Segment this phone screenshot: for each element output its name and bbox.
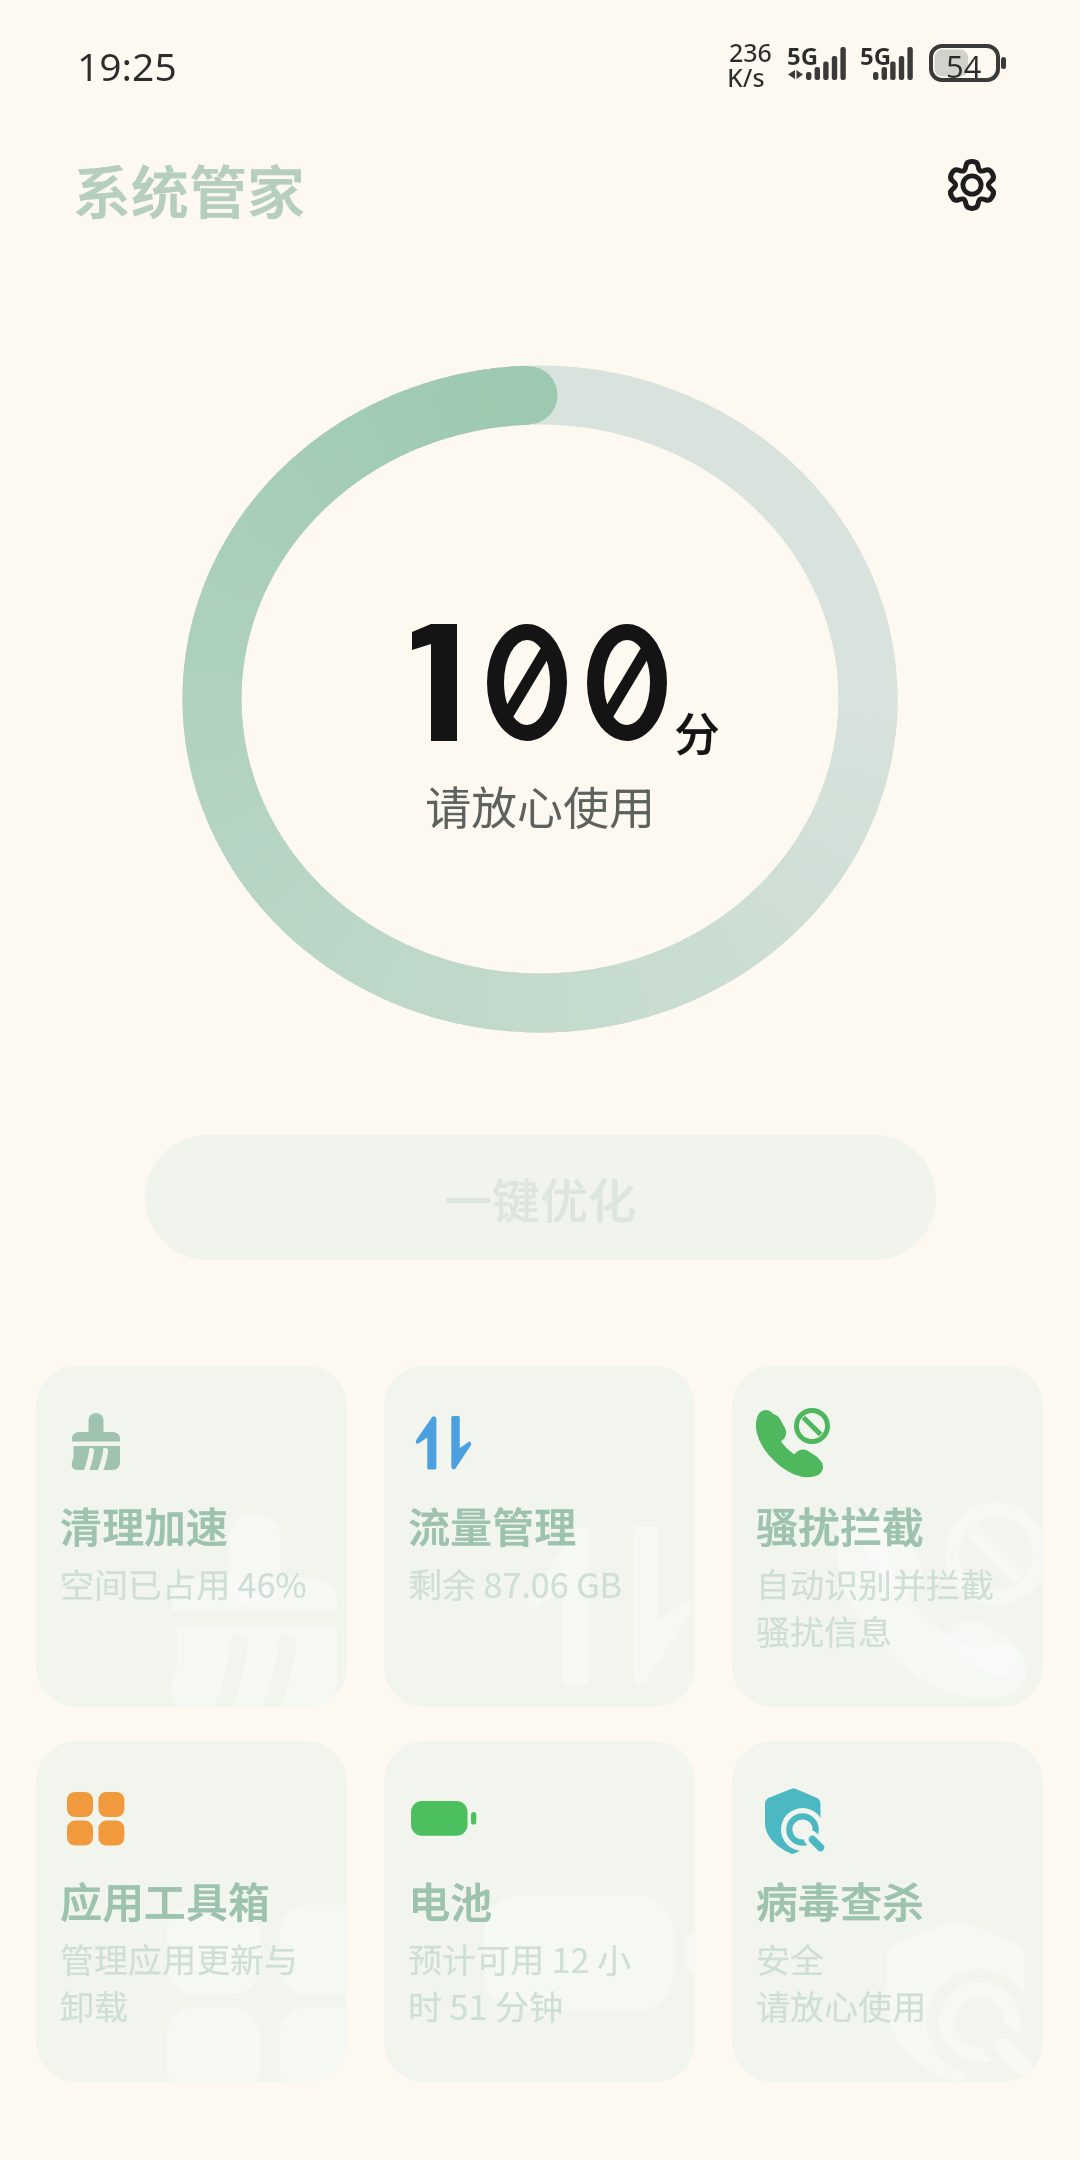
staticText: 空间已占用 46% <box>60 1559 307 1608</box>
staticText: 流量管理 <box>408 1494 577 1555</box>
staticText: 骚扰拦截 <box>756 1494 925 1555</box>
staticText: 应用工具箱 <box>60 1869 271 1930</box>
button[interactable]: Settings <box>927 140 1017 230</box>
staticText: 19:25 <box>77 39 177 92</box>
staticText: 一键优化 <box>444 1163 637 1233</box>
staticText: 5G <box>787 39 819 72</box>
staticText: 分 <box>674 698 720 765</box>
staticText: 病毒查杀 <box>756 1869 925 1930</box>
staticText: 电池 <box>408 1869 493 1930</box>
staticText: 236 <box>729 35 772 69</box>
button[interactable]: 病毒查杀 <box>732 1741 1043 2082</box>
staticText: 54 <box>946 45 982 87</box>
staticText: 系统管家 <box>73 147 306 231</box>
staticText: 请放心使用 <box>0 772 1080 839</box>
button[interactable]: 应用工具箱 <box>36 1741 347 2082</box>
staticText: K/s <box>727 60 765 94</box>
button[interactable]: 流量管理 <box>384 1366 695 1707</box>
staticText: 5G <box>860 39 892 72</box>
staticText: 管理应用更新与 卸载 <box>60 1934 298 2030</box>
staticText: 自动识别并拦截 骚扰信息 <box>756 1559 994 1655</box>
button[interactable]: 一键优化 <box>145 1135 936 1260</box>
staticText: 预计可用 12 小 时 51 分钟 <box>408 1934 631 2030</box>
button[interactable]: 骚扰拦截 <box>732 1366 1043 1707</box>
button[interactable]: 清理加速 <box>36 1366 347 1707</box>
staticText: 清理加速 <box>60 1494 229 1555</box>
staticText: 剩余 87.06 GB <box>408 1559 622 1608</box>
staticText: 安全 请放心使用 <box>756 1934 926 2030</box>
button[interactable]: 电池 <box>384 1741 695 2082</box>
